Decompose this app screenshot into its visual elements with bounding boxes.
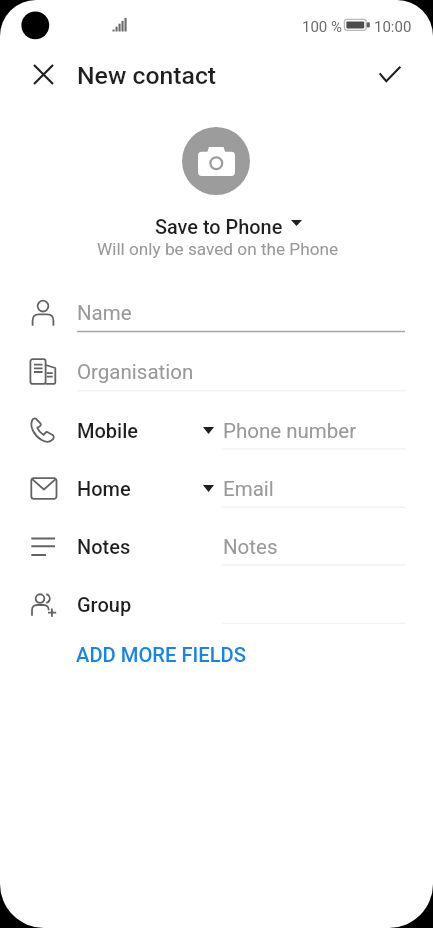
button[interactable]: Close — [21, 52, 65, 96]
staticText: Email — [223, 477, 274, 501]
staticText: Group — [77, 593, 132, 616]
button[interactable]: ADD MORE FIELDS — [62, 635, 260, 675]
staticText: Notes — [77, 535, 131, 558]
button[interactable]: Name — [0, 289, 433, 334]
staticText: Save to Phone — [155, 216, 283, 239]
staticText: 10:00 — [374, 18, 412, 36]
button[interactable]: Home — [0, 449, 433, 509]
button[interactable]: Save contact — [368, 52, 412, 96]
button[interactable]: Save to Phone — [147, 209, 291, 246]
staticText: Organisation — [77, 360, 194, 384]
button[interactable]: Notes — [0, 507, 433, 567]
staticText: 100 % — [302, 18, 342, 36]
staticText: Home — [77, 477, 131, 500]
button[interactable]: Organisation — [0, 332, 433, 393]
staticText: Notes — [223, 535, 278, 559]
staticText: Mobile — [77, 419, 138, 442]
staticText: Name — [77, 301, 132, 325]
staticText: Phone number — [223, 419, 357, 443]
button[interactable]: Add contact photo — [182, 127, 250, 195]
button[interactable]: Group — [0, 565, 433, 625]
staticText: New contact — [77, 61, 217, 90]
staticText: Will only be saved on the Phone — [97, 239, 339, 259]
staticText: ADD MORE FIELDS — [76, 643, 246, 667]
button[interactable]: Mobile — [0, 390, 433, 451]
